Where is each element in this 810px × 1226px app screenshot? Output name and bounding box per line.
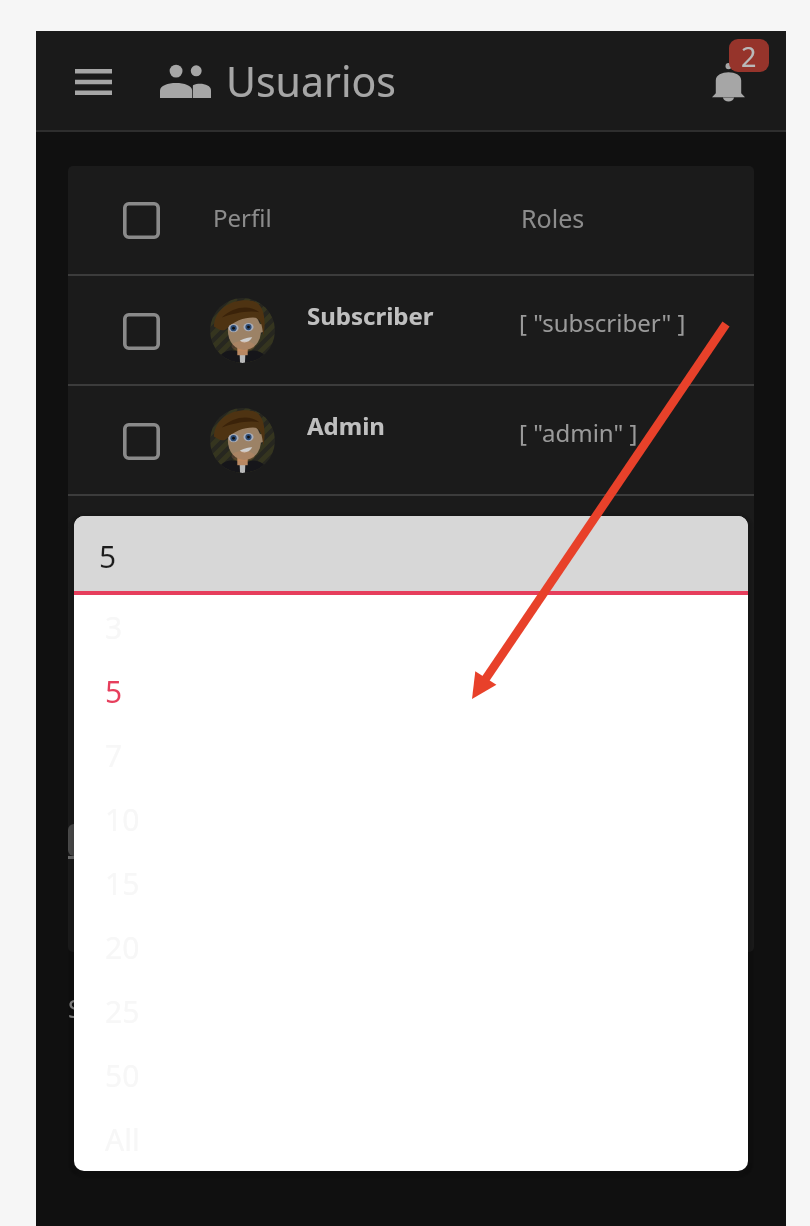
- staticText: Usuarios: [226, 53, 396, 109]
- button[interactable]: Select row: [118, 308, 164, 354]
- staticText: 5: [105, 671, 123, 712]
- button[interactable]: Select row: [118, 418, 164, 464]
- button[interactable]: Rows per page: [68, 824, 188, 856]
- staticText: Admin: [307, 409, 385, 442]
- staticText: Roles: [521, 201, 585, 235]
- staticText: Showing 1 to 2 of 2 entries: [68, 991, 380, 1025]
- button[interactable]: All: [74, 1107, 748, 1171]
- staticText: [ "subscriber" ]: [519, 306, 686, 339]
- button[interactable]: Notifications: [697, 48, 760, 117]
- staticText: 50: [105, 1055, 140, 1096]
- staticText: 2: [741, 39, 757, 71]
- staticText: 5: [99, 536, 117, 577]
- button[interactable]: Select row: [118, 197, 164, 243]
- button[interactable]: Open navigation menu: [63, 57, 124, 107]
- staticText: Perfil: [213, 201, 272, 234]
- button[interactable]: 3: [74, 595, 748, 659]
- button[interactable]: Select row: [68, 276, 754, 384]
- button[interactable]: 5: [74, 659, 748, 723]
- staticText: [ "admin" ]: [519, 416, 638, 449]
- staticText: Subscriber: [307, 299, 434, 332]
- staticText: All: [105, 1119, 140, 1160]
- button[interactable]: 5: [74, 516, 748, 591]
- button[interactable]: Select row: [68, 386, 754, 494]
